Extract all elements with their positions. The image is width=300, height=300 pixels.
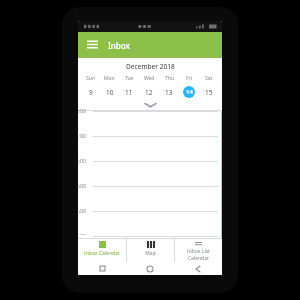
staticText: Wed xyxy=(144,75,155,82)
button[interactable]: 13 xyxy=(159,85,179,99)
button[interactable]: 9 xyxy=(81,85,100,99)
staticText: 13 xyxy=(165,88,173,97)
staticText: Tue xyxy=(125,75,134,82)
button[interactable]: Map xyxy=(127,238,174,262)
staticText: 10:00 xyxy=(78,108,86,115)
button[interactable]: 12 xyxy=(139,85,159,99)
button[interactable]: Recent apps xyxy=(78,262,126,275)
button[interactable]: 15:00 xyxy=(78,236,222,238)
staticText: Sun xyxy=(86,75,95,82)
staticText: 14:00 xyxy=(78,208,86,215)
button[interactable]: 11 xyxy=(119,85,139,99)
button[interactable]: 10:00 xyxy=(78,111,222,136)
button[interactable]: Expand month view xyxy=(78,99,222,110)
staticText: 15:00 xyxy=(78,233,86,235)
staticText: December 2018 xyxy=(126,62,175,71)
button[interactable]: 14 xyxy=(179,85,199,99)
staticText: 11 xyxy=(125,88,133,97)
staticText: 12 xyxy=(145,88,153,97)
staticText: Sat xyxy=(205,75,213,82)
staticText: 14 xyxy=(186,88,193,96)
staticText: Mon xyxy=(104,75,115,82)
staticText: Inbox Calendar xyxy=(84,250,120,257)
button[interactable]: Back xyxy=(174,262,222,275)
button[interactable]: 10 xyxy=(100,85,119,99)
staticText: 11:00 xyxy=(78,133,86,140)
staticText: 15 xyxy=(205,88,213,97)
button[interactable]: Inbox Calendar xyxy=(78,238,126,262)
button[interactable]: 14:00 xyxy=(78,211,222,236)
staticText: 9 xyxy=(89,88,93,97)
button[interactable]: 13:00 xyxy=(78,186,222,211)
button[interactable]: Inbox List Calendar xyxy=(175,238,222,262)
staticText: Map xyxy=(145,250,156,257)
button[interactable]: 15 xyxy=(199,85,219,99)
button[interactable]: 12:00 xyxy=(78,161,222,186)
staticText: 12:00 xyxy=(78,158,86,165)
button[interactable]: Home xyxy=(126,262,174,275)
staticText: 10 xyxy=(106,88,114,97)
button[interactable]: Open navigation menu xyxy=(83,36,101,54)
staticText: Thu xyxy=(165,75,174,82)
staticText: Inbox xyxy=(108,40,130,51)
staticText: 13:00 xyxy=(78,183,86,190)
button[interactable]: 11:00 xyxy=(78,136,222,161)
staticText: Fri xyxy=(186,75,192,82)
staticText: Inbox List Calendar xyxy=(187,248,210,261)
